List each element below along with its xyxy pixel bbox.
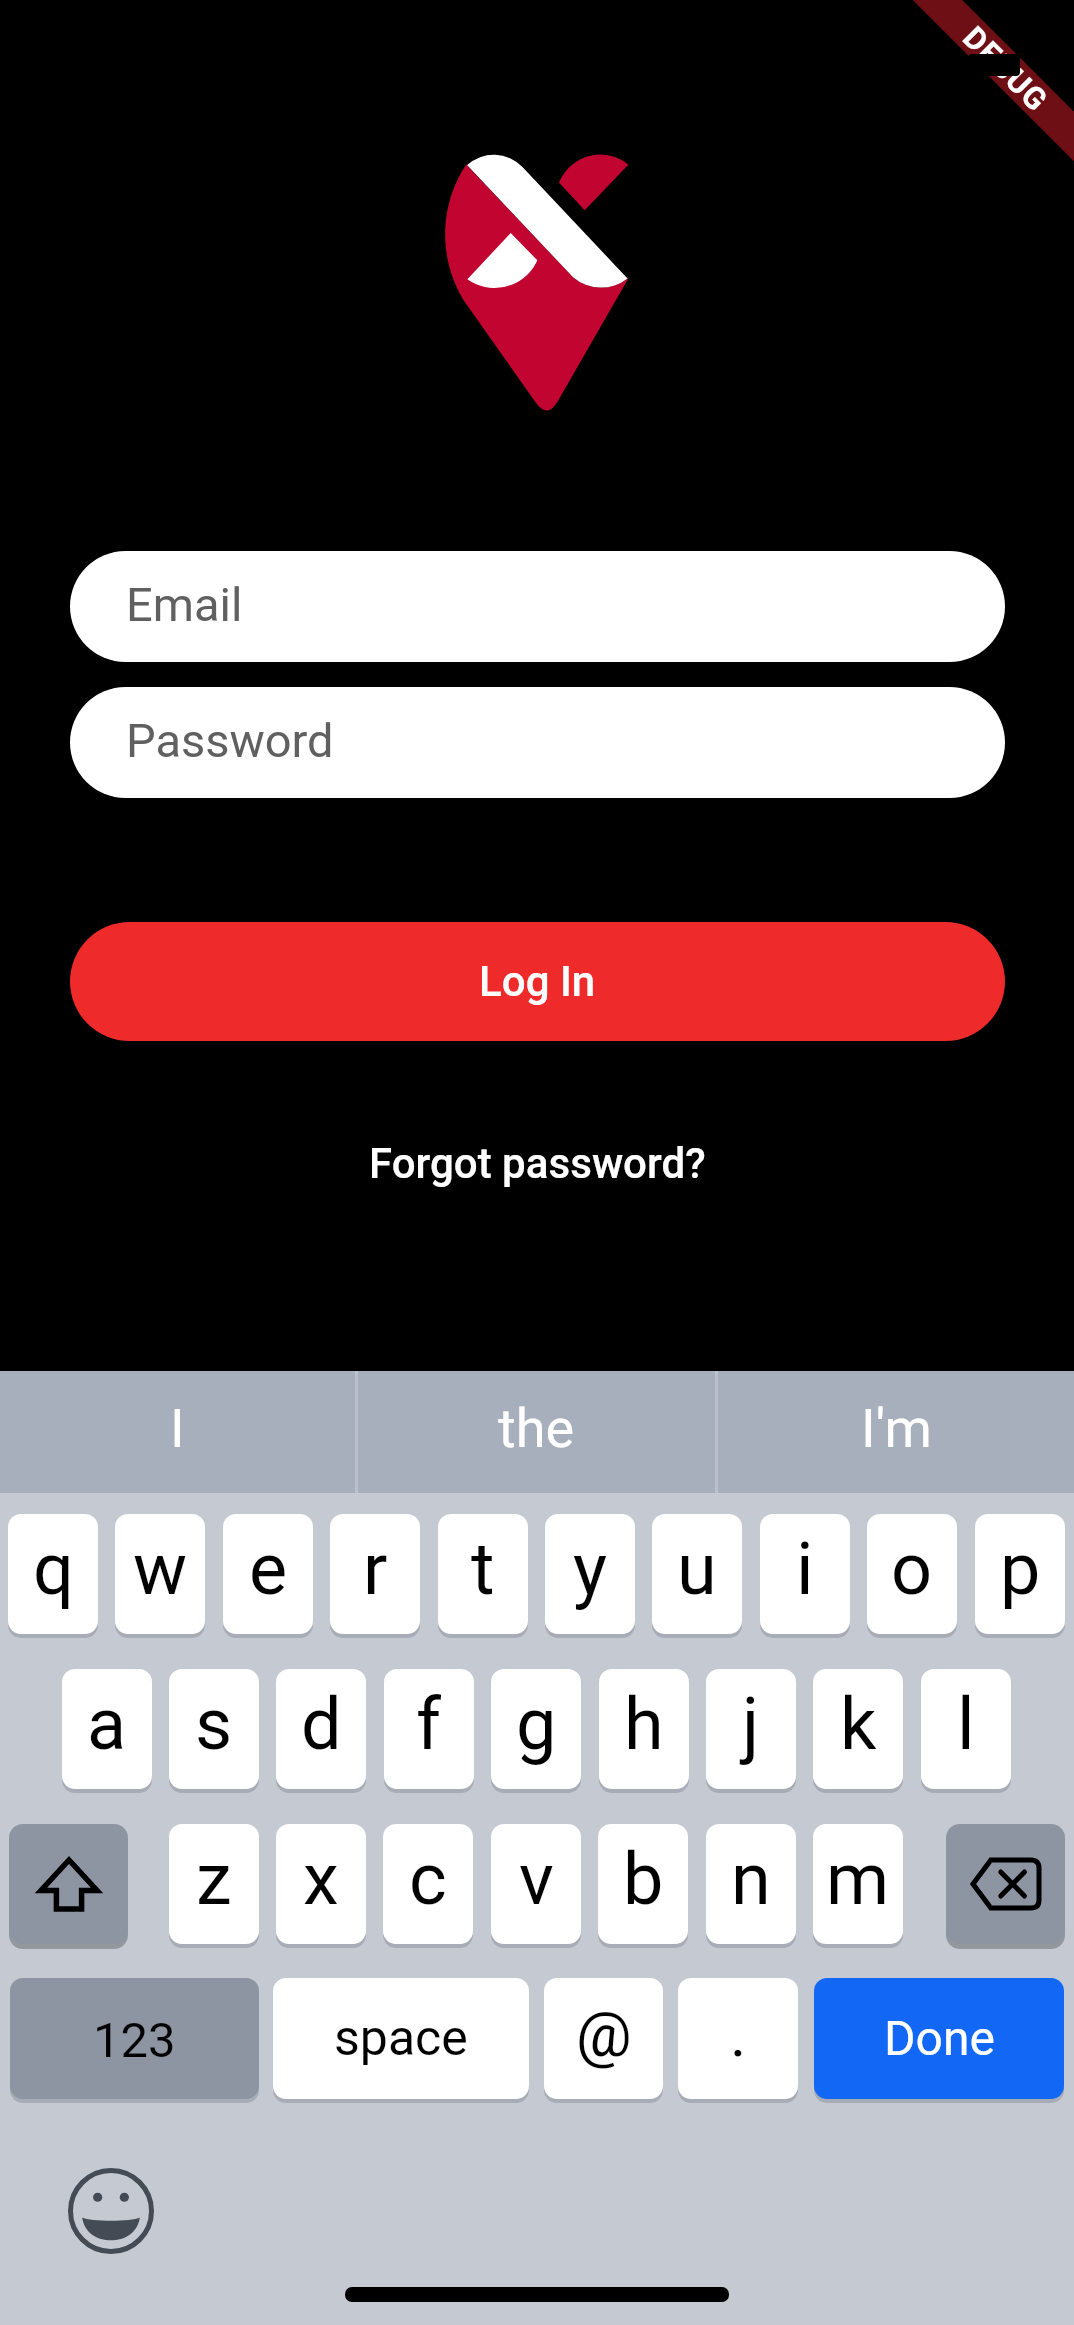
staticText: p [1000,1527,1041,1611]
staticText: space [334,2009,468,2068]
button[interactable]: I'm [718,1371,1074,1493]
button[interactable]: k [813,1669,903,1789]
staticText: g [516,1682,557,1766]
staticText: the [498,1397,575,1460]
button[interactable]: s [169,1669,259,1789]
button[interactable]: z [169,1824,259,1944]
button[interactable]: r [330,1514,420,1634]
button[interactable]: a [62,1669,152,1789]
button[interactable]: w [115,1514,205,1634]
staticText: a [87,1682,127,1766]
button[interactable]: Forgot password? [337,1127,737,1199]
staticText: t [471,1527,495,1611]
button[interactable]: n [706,1824,796,1944]
button[interactable]: p [975,1514,1065,1634]
staticText: Password [126,713,334,768]
staticText: i [796,1527,814,1611]
staticText: r [363,1527,388,1611]
staticText: @ [576,1998,632,2071]
button[interactable]: Log In [70,922,1005,1041]
button[interactable]: o [867,1514,957,1634]
button[interactable]: Email [70,551,1005,662]
staticText: Email [126,577,243,632]
staticText: j [742,1682,760,1766]
staticText: m [826,1837,890,1921]
staticText: e [249,1527,288,1611]
button[interactable]: I [0,1371,355,1493]
button[interactable]: @ [544,1978,663,2099]
button[interactable]: u [652,1514,742,1634]
staticText: c [409,1837,447,1921]
staticText: q [33,1527,74,1611]
staticText: . [730,1998,747,2071]
button[interactable]: 123 [10,1978,259,2099]
staticText: s [195,1682,233,1766]
button[interactable]: Emoji [68,2168,154,2254]
button[interactable]: b [598,1824,688,1944]
button[interactable]: the [358,1371,715,1493]
button[interactable]: y [545,1514,635,1634]
button[interactable]: Done [814,1978,1064,2099]
staticText: Log In [479,957,596,1006]
button[interactable]: Password [70,687,1005,798]
staticText: b [623,1837,664,1921]
staticText: y [573,1527,608,1611]
staticText: I [170,1397,185,1460]
button[interactable]: Shift [9,1824,128,1944]
button[interactable]: t [438,1514,528,1634]
button[interactable]: space [273,1978,529,2099]
button[interactable]: v [491,1824,581,1944]
staticText: Done [884,2010,995,2066]
button[interactable]: g [491,1669,581,1789]
staticText: DEBUG [957,19,1055,118]
button[interactable]: q [8,1514,98,1634]
button[interactable]: Backspace [946,1824,1065,1944]
staticText: n [731,1837,771,1921]
staticText: l [957,1682,975,1766]
button[interactable]: h [599,1669,689,1789]
staticText: z [196,1837,232,1921]
staticText: d [301,1682,342,1766]
button[interactable]: m [813,1824,903,1944]
staticText: I'm [861,1397,932,1460]
staticText: h [624,1682,664,1766]
staticText: k [840,1682,877,1766]
button[interactable]: d [276,1669,366,1789]
button[interactable]: j [706,1669,796,1789]
button[interactable]: i [760,1514,850,1634]
staticText: f [416,1682,442,1766]
button[interactable]: c [383,1824,473,1944]
button[interactable]: l [921,1669,1011,1789]
button[interactable]: . [678,1978,798,2099]
staticText: w [133,1527,188,1611]
staticText: v [519,1837,554,1921]
button[interactable]: x [276,1824,366,1944]
staticText: Forgot password? [369,1139,706,1188]
button[interactable]: e [223,1514,313,1634]
button[interactable]: f [384,1669,474,1789]
staticText: 123 [93,2012,176,2069]
staticText: o [891,1527,933,1611]
staticText: x [303,1837,339,1921]
staticText: u [677,1527,717,1611]
